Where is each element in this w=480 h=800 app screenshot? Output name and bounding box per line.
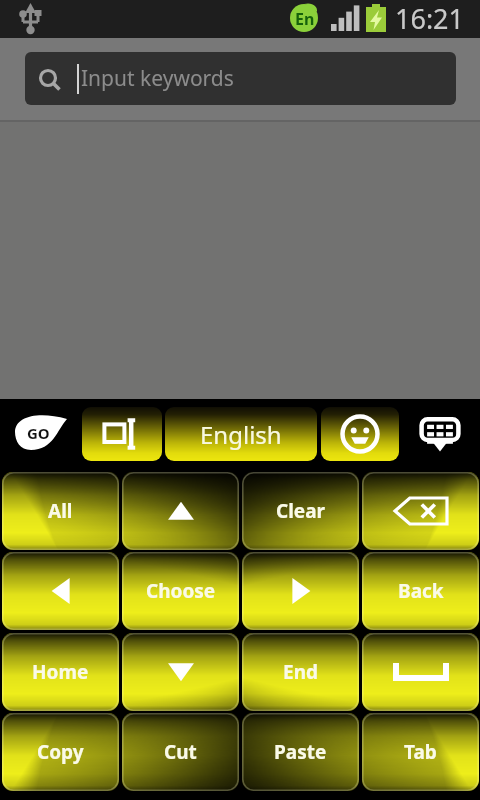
button[interactable]: Back (362, 552, 479, 630)
staticText: Copy (37, 739, 84, 765)
staticText: Tab (404, 739, 437, 765)
button[interactable] (242, 552, 359, 630)
staticText: GO (27, 423, 50, 443)
button[interactable]: Clear (242, 472, 359, 550)
button[interactable] (122, 472, 239, 550)
staticText: En (295, 8, 315, 30)
staticText: English (200, 418, 282, 451)
button[interactable]: Text editing (82, 407, 162, 461)
staticText: Cut (164, 739, 197, 765)
button[interactable] (122, 633, 239, 711)
staticText: Choose (146, 578, 216, 604)
button[interactable]: Emoji (321, 407, 399, 461)
button[interactable] (362, 633, 479, 711)
button[interactable] (362, 472, 479, 550)
button[interactable]: End (242, 633, 359, 711)
staticText: Back (398, 578, 444, 604)
button[interactable]: All (2, 472, 119, 550)
button[interactable]: Tab (362, 713, 479, 791)
button[interactable]: Home (2, 633, 119, 711)
button[interactable]: Copy (2, 713, 119, 791)
staticText: Home (32, 659, 89, 685)
staticText: End (283, 659, 318, 685)
button[interactable] (2, 552, 119, 630)
staticText: Clear (276, 498, 326, 524)
button[interactable]: Cut (122, 713, 239, 791)
staticText: 16:21 (395, 0, 465, 37)
button[interactable]: Input keywords (25, 52, 456, 105)
button[interactable]: Paste (242, 713, 359, 791)
staticText: Paste (274, 739, 327, 765)
staticText: Input keywords (81, 64, 234, 93)
staticText: All (48, 498, 73, 524)
button[interactable]: Hide keyboard (408, 407, 472, 461)
button[interactable]: Choose (122, 552, 239, 630)
button[interactable]: English (165, 407, 317, 461)
